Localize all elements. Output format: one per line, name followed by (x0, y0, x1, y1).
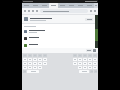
button[interactable]: Reload (31, 9, 35, 13)
button[interactable] (22, 36, 95, 41)
button[interactable] (58, 3, 67, 8)
button[interactable] (93, 62, 97, 65)
button[interactable] (73, 62, 77, 65)
button[interactable] (33, 66, 37, 69)
button[interactable] (85, 3, 94, 8)
button[interactable] (28, 66, 32, 69)
button[interactable] (28, 54, 32, 57)
button[interactable] (79, 70, 89, 73)
button[interactable] (88, 62, 92, 65)
button[interactable] (33, 54, 37, 57)
button[interactable]: Home (35, 9, 39, 13)
button[interactable] (78, 58, 82, 61)
button[interactable] (22, 29, 95, 34)
button[interactable] (93, 54, 97, 57)
button[interactable] (94, 70, 97, 73)
button[interactable] (83, 58, 87, 61)
button[interactable] (28, 58, 32, 61)
button[interactable] (23, 70, 26, 73)
button[interactable]: New tab (94, 3, 98, 8)
button[interactable] (31, 3, 40, 8)
button[interactable] (43, 54, 47, 57)
button[interactable] (49, 3, 58, 8)
button[interactable] (28, 62, 32, 65)
button[interactable] (33, 62, 37, 65)
button[interactable] (38, 54, 42, 57)
button[interactable] (43, 62, 47, 65)
button[interactable] (83, 54, 87, 57)
button[interactable]: Menu (93, 9, 97, 13)
button[interactable] (88, 58, 92, 61)
button[interactable] (76, 3, 85, 8)
button[interactable] (73, 54, 77, 57)
button[interactable] (22, 43, 95, 48)
button[interactable] (83, 62, 87, 65)
button[interactable] (78, 62, 82, 65)
button[interactable] (38, 58, 42, 61)
button[interactable] (67, 3, 76, 8)
button[interactable] (23, 62, 27, 65)
button[interactable] (27, 70, 39, 73)
button[interactable] (93, 58, 97, 61)
button[interactable] (88, 54, 92, 57)
button[interactable] (23, 58, 27, 61)
button[interactable] (38, 66, 42, 69)
button[interactable] (22, 3, 31, 8)
button[interactable]: Bookmark (89, 9, 93, 13)
button[interactable] (93, 66, 97, 69)
button[interactable] (43, 58, 47, 61)
button[interactable] (85, 18, 93, 21)
button[interactable] (88, 66, 92, 69)
button[interactable]: Keyboard settings (93, 49, 96, 52)
button[interactable] (78, 66, 82, 69)
button[interactable]: Forward (27, 9, 31, 13)
button[interactable] (40, 9, 88, 13)
button[interactable] (90, 70, 93, 73)
button[interactable] (23, 54, 27, 57)
button[interactable] (40, 3, 49, 8)
button[interactable] (22, 15, 95, 23)
button[interactable]: Back (23, 9, 27, 13)
button[interactable] (86, 49, 92, 52)
button[interactable] (38, 62, 42, 65)
button[interactable] (78, 54, 82, 57)
button[interactable] (33, 58, 37, 61)
button[interactable] (23, 66, 27, 69)
button[interactable] (83, 66, 87, 69)
button[interactable] (73, 58, 77, 61)
